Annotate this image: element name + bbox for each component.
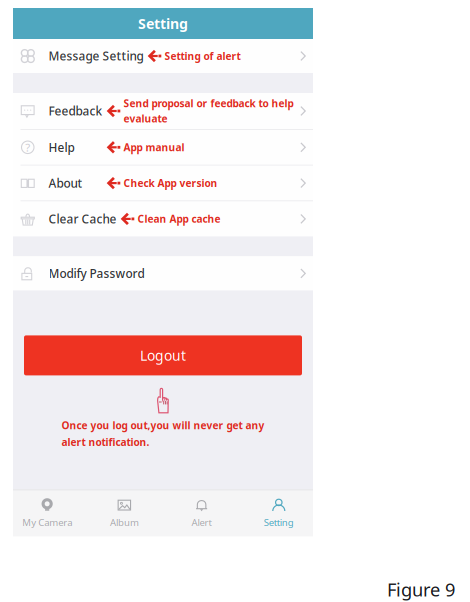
- staticText: Send proposal or feedback to help: [123, 96, 293, 110]
- staticText: Feedback: [48, 103, 102, 119]
- button[interactable]: Alert: [163, 490, 240, 536]
- staticText: Figure 9: [387, 577, 455, 602]
- staticText: alert notification.: [61, 435, 149, 449]
- staticText: My Camera: [22, 516, 72, 529]
- staticText: Setting: [138, 14, 188, 33]
- staticText: Help: [48, 139, 74, 155]
- button[interactable]: Modify Password: [13, 256, 313, 290]
- staticText: Once you log out,you will never get any: [61, 418, 264, 432]
- staticText: evaluate: [123, 112, 167, 126]
- staticText: About: [48, 175, 82, 191]
- button[interactable]: Clear Cache: [13, 201, 313, 236]
- button[interactable]: My Camera: [9, 490, 86, 536]
- button[interactable]: Album: [86, 490, 163, 536]
- staticText: Message Setting: [48, 48, 143, 64]
- button[interactable]: Setting: [240, 490, 317, 536]
- staticText: Logout: [140, 346, 186, 365]
- button[interactable]: Feedback: [13, 93, 313, 130]
- button[interactable]: Logout: [24, 335, 302, 375]
- staticText: Setting: [264, 516, 294, 529]
- staticText: Clear Cache: [48, 211, 116, 227]
- button[interactable]: About: [13, 166, 313, 201]
- staticText: ?: [25, 140, 30, 155]
- staticText: Check App version: [123, 176, 217, 190]
- button[interactable]: Message Setting: [13, 39, 313, 73]
- staticText: Clean App cache: [137, 212, 220, 226]
- button[interactable]: ?: [13, 130, 313, 166]
- staticText: Album: [110, 516, 139, 529]
- staticText: Alert: [192, 516, 212, 529]
- staticText: Setting of alert: [164, 49, 240, 63]
- staticText: Modify Password: [48, 265, 144, 281]
- staticText: App manual: [123, 140, 184, 154]
